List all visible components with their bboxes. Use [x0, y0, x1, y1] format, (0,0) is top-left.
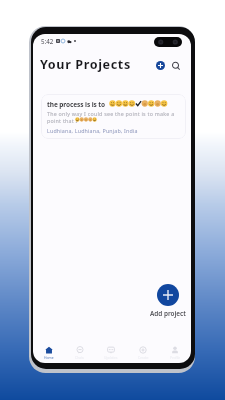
staticText: Home — [44, 355, 54, 360]
button[interactable]: Chats — [64, 337, 95, 363]
button[interactable]: Add project — [157, 284, 179, 306]
button[interactable]: Home — [33, 337, 64, 363]
staticText: 5:42 — [41, 37, 54, 45]
button[interactable]: Profile — [159, 337, 191, 363]
staticText: Add project — [150, 309, 186, 318]
staticText: the process is is to — [47, 100, 106, 109]
staticText: Chats — [75, 355, 84, 360]
button[interactable]: the process is is to — [41, 94, 186, 139]
staticText: Your Projects — [40, 56, 131, 73]
button[interactable]: Updates — [95, 337, 127, 363]
button[interactable]: New project — [156, 61, 165, 70]
button[interactable]: Create — [127, 337, 159, 363]
button[interactable]: Search — [170, 60, 182, 72]
staticText: The only way I could see the point is to… — [47, 110, 175, 117]
staticText: Updates — [104, 355, 118, 360]
staticText: Create — [138, 355, 149, 360]
staticText: Profile — [170, 355, 181, 360]
staticText: point that I — [47, 117, 78, 124]
staticText: Ludhiana, Ludhiana, Punjab, India — [47, 127, 138, 134]
